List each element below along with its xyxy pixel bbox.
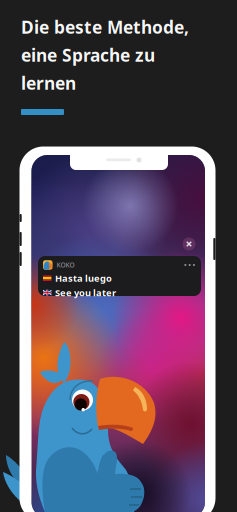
staticText: Die beste Methode, — [21, 15, 189, 38]
button[interactable]: Dismiss notification — [182, 237, 195, 250]
staticText: See you later — [55, 286, 116, 299]
staticText: lernen — [21, 71, 76, 94]
staticText: eine Sprache zu — [21, 43, 155, 66]
staticText: Hasta luego — [55, 272, 112, 284]
staticText: KOKO — [57, 261, 75, 269]
